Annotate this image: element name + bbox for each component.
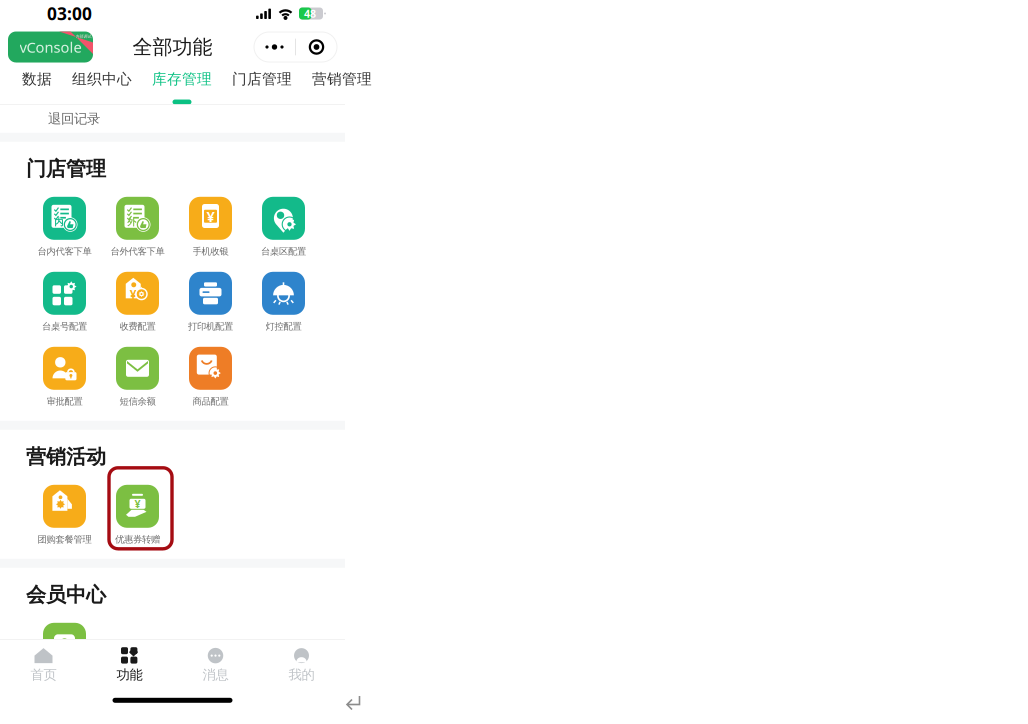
staticText: 短信余额 [119, 396, 155, 407]
staticText: 消息 [202, 667, 228, 683]
button[interactable]: 功能 [86, 642, 172, 688]
staticText: 台桌区配置 [261, 246, 306, 257]
staticText: ¥ [130, 286, 137, 302]
button[interactable]: 我的 [258, 642, 344, 688]
button[interactable]: 营销管理 [312, 67, 372, 104]
staticText: ¥ [134, 497, 140, 511]
staticText: 功能 [116, 667, 142, 683]
staticText: 会员中心 [26, 582, 106, 607]
button[interactable]: ¥ [101, 271, 174, 334]
staticText: 打印机配置 [188, 321, 233, 332]
button[interactable]: 灯控配置 [247, 271, 320, 334]
button[interactable]: Close [296, 32, 337, 62]
staticText: 全部功能 [132, 35, 212, 59]
button[interactable]: 打印机配置 [174, 271, 247, 334]
staticText: 商品配置 [192, 396, 228, 407]
button[interactable]: 库存管理 [152, 67, 212, 104]
button[interactable]: 团购套餐管理 [28, 484, 101, 547]
staticText: 外 [127, 216, 136, 228]
button[interactable]: ¥ [101, 484, 174, 547]
button[interactable]: 数据 [22, 67, 52, 104]
button[interactable]: 内部调试 [8, 31, 93, 62]
button[interactable]: 首页 [0, 642, 86, 688]
staticText: 内 [54, 216, 63, 228]
button[interactable]: 商品配置 [174, 346, 247, 409]
button[interactable]: 消息 [172, 642, 258, 688]
staticText: 48 [304, 6, 316, 21]
staticText: 数据 [22, 70, 52, 88]
staticText: 营销管理 [312, 70, 372, 88]
staticText: 库存管理 [152, 70, 212, 88]
staticText: 台桌号配置 [42, 321, 87, 332]
button[interactable]: More [254, 32, 295, 62]
button[interactable]: 外 [101, 196, 174, 259]
staticText: 首页 [30, 667, 56, 683]
button[interactable]: 组织中心 [72, 67, 132, 104]
button[interactable]: 门店管理 [232, 67, 292, 104]
staticText: 门店管理 [26, 156, 106, 181]
staticText: 审批配置 [46, 396, 82, 407]
staticText: 收费配置 [119, 321, 155, 332]
staticText: 内部调试 [75, 34, 91, 39]
staticText: ¥ [206, 206, 214, 226]
staticText: 优惠券转赠 [115, 534, 160, 545]
staticText: 台外代客下单 [110, 246, 164, 257]
staticText: 团购套餐管理 [37, 534, 91, 545]
button[interactable]: 台桌号配置 [28, 271, 101, 334]
staticText: 组织中心 [72, 70, 132, 88]
button[interactable]: 审批配置 [28, 346, 101, 409]
button[interactable]: 短信余额 [101, 346, 174, 409]
button[interactable] [28, 622, 101, 685]
staticText: 退回记录 [48, 111, 100, 127]
staticText: 营销活动 [26, 444, 106, 469]
staticText: 手机收银 [192, 246, 228, 257]
staticText: 我的 [288, 667, 314, 683]
staticText: 台内代客下单 [37, 246, 91, 257]
button[interactable]: 内 [28, 196, 101, 259]
button[interactable]: ¥ [174, 196, 247, 259]
staticText: 灯控配置 [265, 321, 301, 332]
button[interactable]: 台桌区配置 [247, 196, 320, 259]
staticText: 03:00 [47, 2, 92, 25]
staticText: vConsole [19, 37, 81, 57]
staticText: 门店管理 [232, 70, 292, 88]
